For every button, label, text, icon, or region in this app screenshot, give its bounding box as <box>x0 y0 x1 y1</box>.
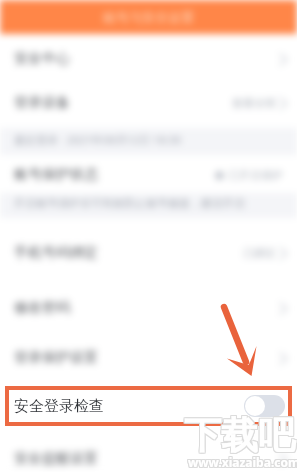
staticText: www.xiazaiba.com <box>187 455 297 471</box>
button[interactable]: Safety login check toggle <box>244 395 285 417</box>
staticText: 最近登录 · 2021年08月12日 18:30 <box>14 132 181 147</box>
button[interactable]: 安全提醒设置 <box>14 447 287 471</box>
staticText: www.xiazaiba.com <box>187 454 297 470</box>
staticText: 查看全部 <box>232 96 276 110</box>
button[interactable]: 账号保护状态 <box>14 163 287 187</box>
staticText: www.xiazaiba.com <box>188 454 297 470</box>
staticText: 下载吧 <box>185 413 296 460</box>
staticText: www.xiazaiba.com <box>189 454 297 470</box>
staticText: www.xiazaiba.com <box>189 455 297 471</box>
staticText: www.xiazaiba.com <box>188 453 297 469</box>
button[interactable]: 安全中心 <box>14 47 287 71</box>
button[interactable]: 修改密码 <box>14 296 287 320</box>
staticText: www.xiazaiba.com <box>189 453 297 469</box>
button[interactable]: 登录设备 <box>14 91 287 115</box>
staticText: 下载吧 <box>184 413 295 460</box>
staticText: 账号与安全设置 <box>103 9 194 25</box>
staticText: 下载吧 <box>183 411 294 458</box>
staticText: 已绑定 <box>243 246 276 260</box>
staticText: 手机号码绑定 <box>14 244 98 262</box>
staticText: 安全中心 <box>14 50 70 68</box>
staticText: 登录设备 <box>14 94 70 112</box>
button[interactable]: 安全登录检查 <box>5 386 292 426</box>
staticText: www.xiazaiba.com <box>187 453 297 469</box>
staticText: 下载吧 <box>184 412 295 459</box>
staticText: 下载吧 <box>185 411 296 458</box>
staticText: 下载吧 <box>184 411 295 458</box>
staticText: 安全提醒设置 <box>14 450 98 468</box>
staticText: 已开启保护 <box>228 168 283 182</box>
staticText: 修改密码 <box>14 299 70 317</box>
staticText: 开启账号保护后可有效防止账号被盗，建议开启 <box>14 196 245 210</box>
button[interactable]: 安全登录检查 <box>14 393 287 417</box>
staticText: 安全登录检查 <box>14 396 98 414</box>
staticText: 下载吧 <box>183 413 294 460</box>
staticText: 安全登录检查 <box>14 397 104 416</box>
button[interactable]: 登录保护设置 <box>14 346 287 370</box>
staticText: 下载吧 <box>185 412 296 459</box>
staticText: 账号保护状态 <box>14 166 98 184</box>
button[interactable]: 手机号码绑定 <box>14 241 287 265</box>
other: Pointer arrow <box>0 0 297 472</box>
staticText: 下载吧 <box>183 412 294 459</box>
staticText: 登录保护设置 <box>14 349 98 367</box>
staticText: www.xiazaiba.com <box>188 455 297 471</box>
